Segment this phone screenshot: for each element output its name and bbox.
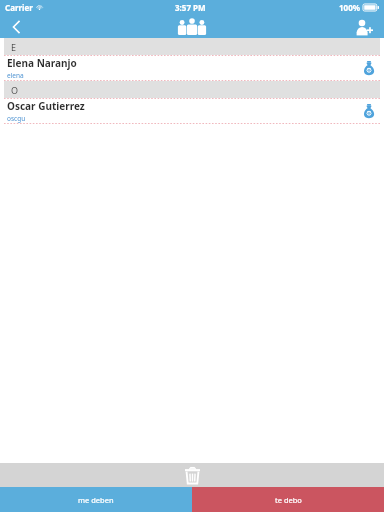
button[interactable]: Add person <box>344 15 384 38</box>
staticText: me deben <box>78 495 114 505</box>
button[interactable]: Oscar Gutierrez <box>0 99 384 123</box>
button[interactable]: te debo <box>192 487 384 512</box>
staticText: elena <box>7 71 24 80</box>
staticText: te debo <box>275 495 302 505</box>
staticText: Elena Naranjo <box>7 56 77 70</box>
button[interactable]: Back <box>0 15 34 38</box>
button[interactable]: Groups <box>165 15 219 38</box>
staticText: Oscar Gutierrez <box>7 99 85 113</box>
button[interactable]: Delete <box>169 463 215 487</box>
staticText: oscgu <box>7 114 26 123</box>
button[interactable]: me deben <box>0 487 192 512</box>
staticText: Carrier <box>5 2 33 13</box>
staticText: 100% <box>339 2 360 13</box>
staticText: 3:57 PM <box>175 2 206 13</box>
button[interactable]: Elena Naranjo <box>0 56 384 80</box>
staticText: O <box>11 84 19 96</box>
staticText: E <box>11 41 17 53</box>
